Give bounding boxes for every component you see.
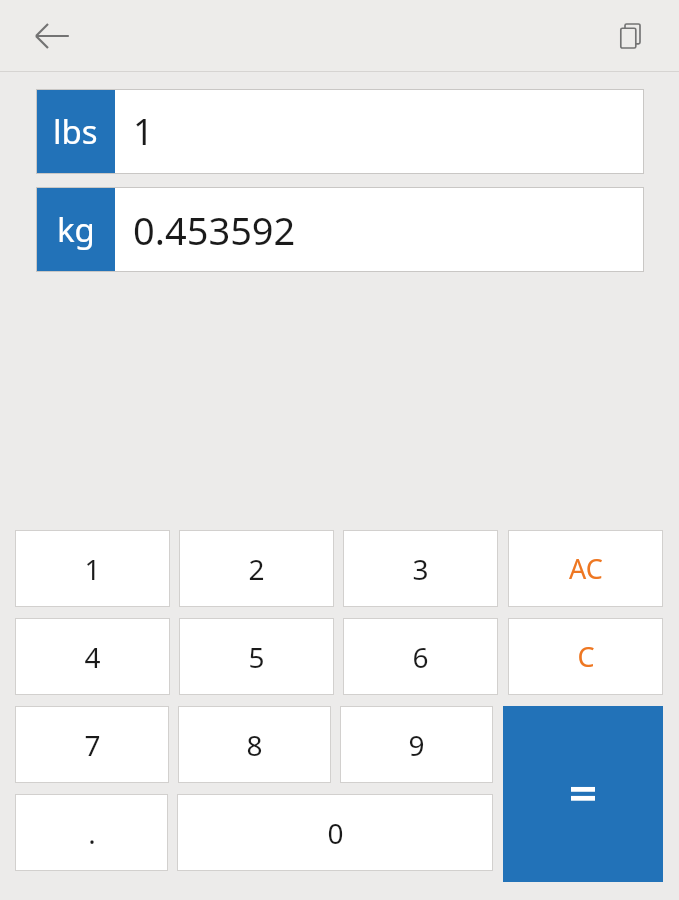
button[interactable]: Equals (503, 706, 663, 882)
button[interactable]: 9 (340, 706, 493, 783)
staticText: AC (569, 550, 603, 587)
staticText: 2 (248, 550, 265, 588)
button[interactable]: 8 (178, 706, 331, 783)
staticText: 1 (84, 550, 101, 588)
staticText: 0.453592 (133, 204, 296, 256)
staticText: 4 (84, 638, 101, 676)
button[interactable]: 2 (179, 530, 334, 607)
staticText: . (88, 814, 96, 852)
button[interactable]: 1 (15, 530, 170, 607)
staticText: 0 (327, 814, 344, 852)
button[interactable]: 0 (177, 794, 493, 871)
button[interactable]: 4 (15, 618, 170, 695)
button[interactable]: 3 (343, 530, 498, 607)
button[interactable]: C (508, 618, 663, 695)
staticText: kg (57, 207, 95, 252)
button[interactable]: . (15, 794, 168, 871)
button[interactable]: Copy (605, 10, 657, 62)
staticText: 9 (408, 726, 425, 764)
button[interactable]: lbs (36, 89, 644, 174)
button[interactable]: 6 (343, 618, 498, 695)
button[interactable]: AC (508, 530, 663, 607)
button[interactable]: kg (36, 187, 644, 272)
staticText: C (577, 638, 595, 675)
button[interactable]: 7 (15, 706, 169, 783)
staticText: 7 (84, 726, 101, 764)
staticText: 6 (412, 638, 429, 676)
button[interactable]: 5 (179, 618, 334, 695)
staticText: 1 (133, 107, 154, 156)
staticText: 8 (246, 726, 263, 764)
button[interactable]: Back (24, 8, 80, 64)
staticText: 3 (412, 550, 429, 588)
staticText: lbs (53, 109, 98, 154)
staticText: 5 (248, 638, 265, 676)
